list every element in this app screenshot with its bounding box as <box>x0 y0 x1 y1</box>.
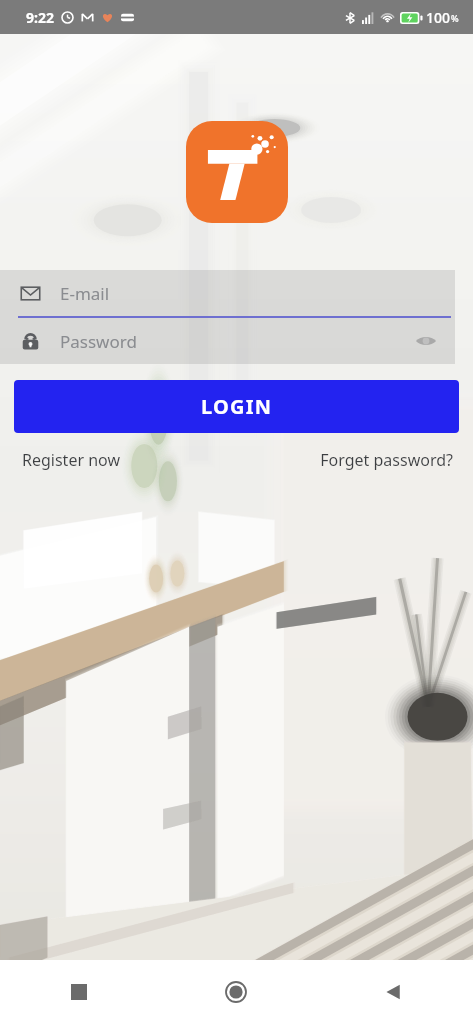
staticText: Password <box>60 330 137 353</box>
staticText: 100 <box>426 8 451 27</box>
button[interactable]: Recent apps <box>0 960 157 1024</box>
button[interactable]: E-mail <box>0 270 455 316</box>
staticText: % <box>451 12 459 24</box>
staticText: LOGIN <box>201 393 273 420</box>
button[interactable]: Back <box>315 960 473 1024</box>
staticText: Register now <box>22 449 121 471</box>
staticText: Forget password? <box>320 449 453 471</box>
button[interactable]: Forget password? <box>320 449 453 471</box>
button[interactable]: Register now <box>22 449 121 471</box>
staticText: 9:22 <box>26 8 54 27</box>
button[interactable]: LOGIN <box>14 380 459 433</box>
button[interactable]: Password <box>0 318 455 364</box>
button[interactable]: Home <box>157 960 315 1024</box>
button[interactable]: Show password <box>411 326 441 356</box>
staticText: E-mail <box>60 282 110 305</box>
